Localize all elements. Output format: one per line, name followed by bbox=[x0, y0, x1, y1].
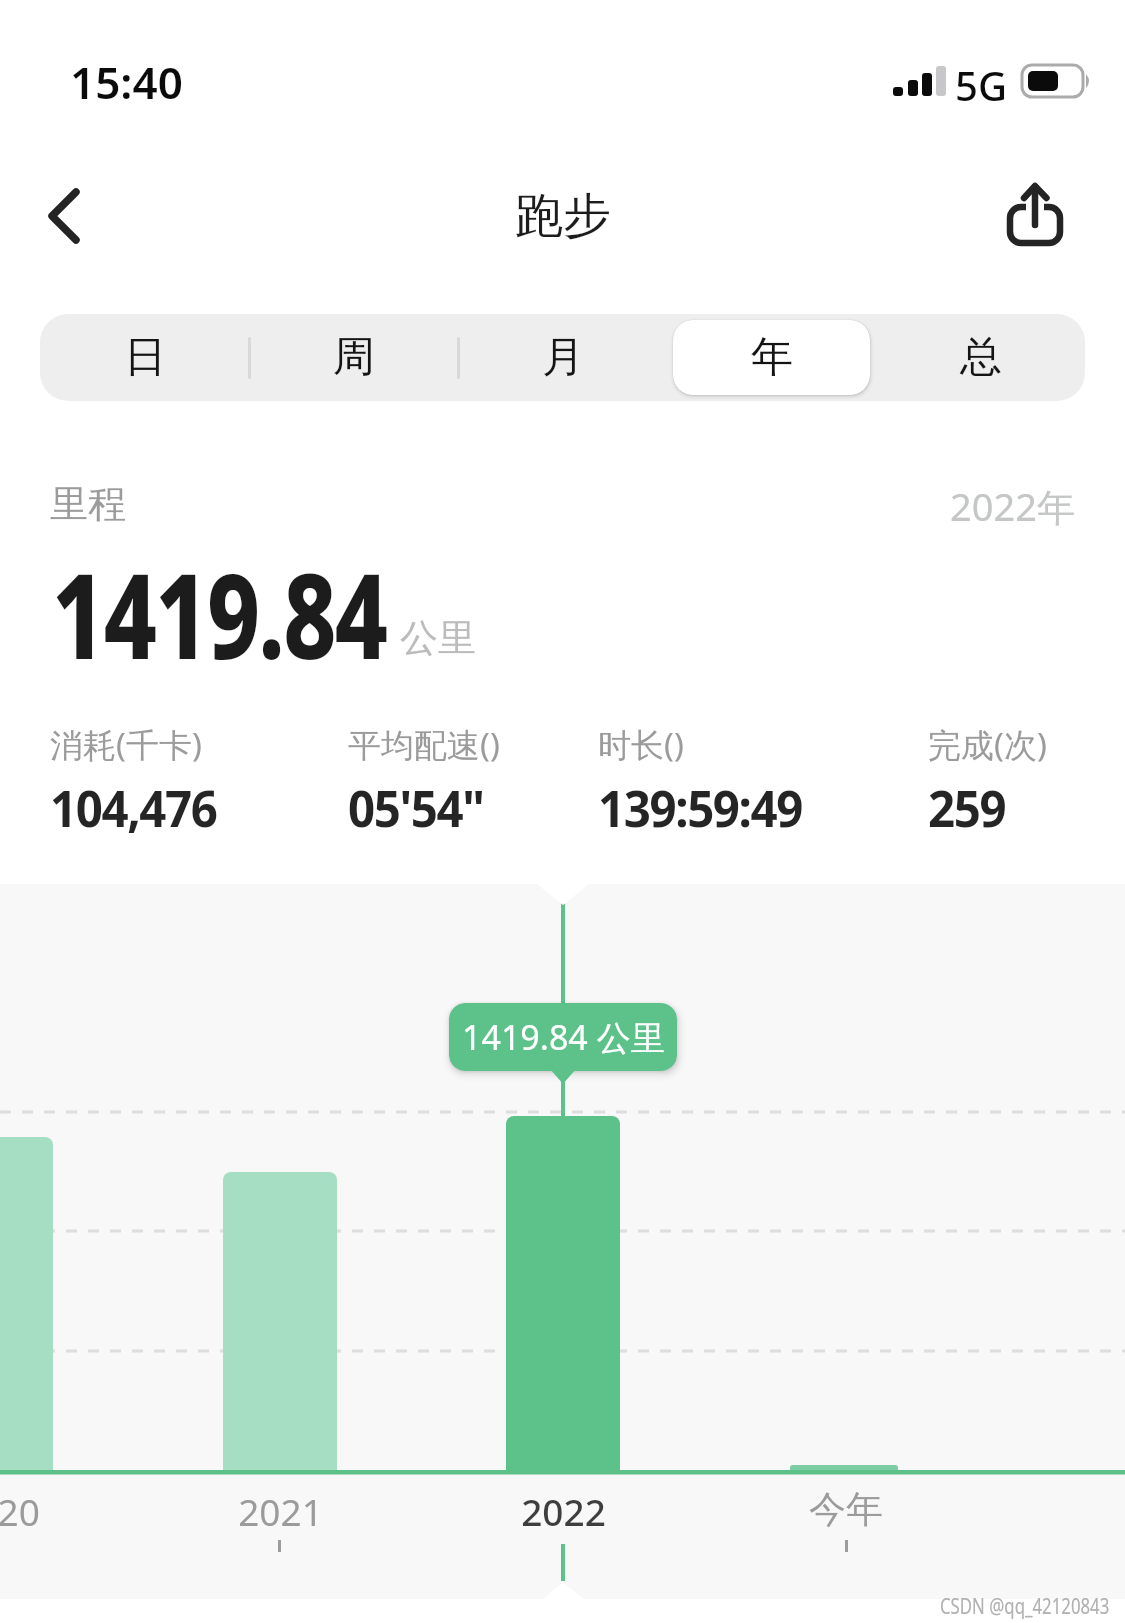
staticText: 完成(次) bbox=[928, 722, 1047, 767]
staticText: 平均配速() bbox=[348, 722, 500, 767]
staticText: 消耗(千卡) bbox=[50, 722, 202, 767]
staticText: CSDN @qq_42120843 bbox=[940, 1592, 1110, 1621]
button[interactable]: 日 bbox=[40, 314, 249, 401]
staticText: 259 bbox=[928, 772, 1006, 841]
staticText: 里程 bbox=[50, 480, 126, 528]
staticText: 周 bbox=[333, 331, 375, 384]
staticText: 05'54" bbox=[348, 772, 484, 841]
staticText: 今年 bbox=[809, 1486, 883, 1530]
staticText: 月 bbox=[542, 331, 584, 384]
staticText: 年 bbox=[751, 331, 793, 384]
staticText: 2022 bbox=[521, 1486, 606, 1530]
staticText: 总 bbox=[960, 331, 1002, 384]
staticText: 104,476 bbox=[50, 772, 217, 841]
staticText: 1419.84 bbox=[52, 533, 387, 694]
button[interactable] bbox=[1000, 175, 1070, 255]
staticText: 跑步 bbox=[515, 186, 611, 246]
button[interactable]: 月 bbox=[458, 314, 667, 401]
button[interactable]: 周 bbox=[249, 314, 458, 401]
staticText: 139:59:49 bbox=[598, 772, 803, 841]
staticText: 时长() bbox=[598, 722, 684, 767]
staticText: 2021 bbox=[238, 1486, 323, 1530]
button[interactable]: 年 bbox=[667, 314, 876, 401]
button[interactable]: 总 bbox=[876, 314, 1085, 401]
staticText: 1419.84 公里 bbox=[462, 1014, 665, 1060]
staticText: 5G bbox=[955, 58, 1007, 112]
staticText: 日 bbox=[124, 331, 166, 384]
staticText: 2022年 bbox=[950, 480, 1075, 532]
button[interactable] bbox=[25, 178, 105, 258]
staticText: 公里 bbox=[400, 614, 476, 662]
staticText: 2020 bbox=[0, 1486, 40, 1530]
staticText: 15:40 bbox=[70, 52, 183, 112]
